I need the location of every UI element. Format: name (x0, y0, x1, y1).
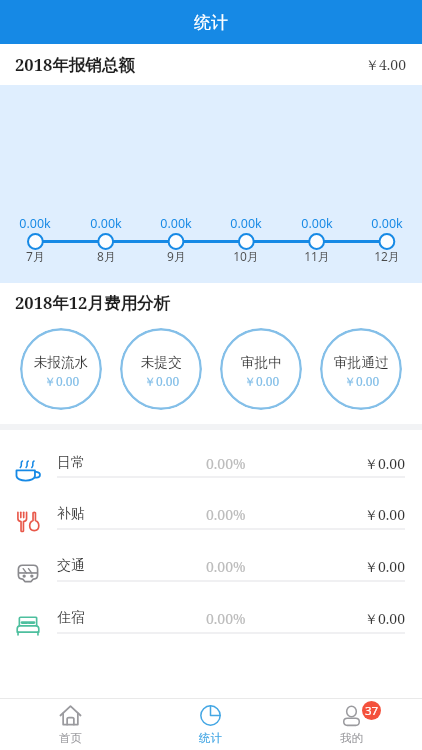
staticText: 0.00k (90, 215, 122, 232)
button[interactable]: 统计 (140, 699, 281, 750)
staticText: 2018年12月费用分析 (15, 291, 170, 314)
staticText: ￥4.00 (365, 55, 406, 74)
staticText: 7月 (26, 248, 45, 264)
staticText: 2018年报销总额 (15, 53, 135, 76)
button[interactable]: 日常 (0, 430, 422, 478)
staticText: 我的 (340, 731, 363, 745)
staticText: 8月 (97, 248, 116, 264)
staticText: 补贴 (57, 505, 85, 523)
staticText: 0.00% (206, 609, 246, 628)
staticText: 统计 (199, 731, 222, 745)
staticText: 11月 (304, 248, 330, 264)
staticText: 未提交 (141, 354, 182, 371)
button[interactable]: 交通 (0, 530, 422, 582)
staticText: 统计 (194, 12, 228, 33)
staticText: 10月 (233, 248, 259, 264)
staticText: 0.00% (206, 454, 246, 473)
button[interactable]: 审批中 (220, 328, 302, 410)
staticText: 审批中 (241, 354, 282, 371)
button[interactable]: 住宿 (0, 582, 422, 634)
staticText: ￥0.00 (344, 373, 380, 389)
staticText: 日常 (57, 454, 85, 472)
staticText: 12月 (374, 248, 400, 264)
button[interactable]: 37 (281, 699, 422, 750)
button[interactable]: 首页 (0, 699, 140, 750)
staticText: 未报流水 (34, 354, 89, 371)
staticText: 37 (365, 703, 379, 719)
staticText: ￥0.00 (244, 373, 280, 389)
button[interactable]: 补贴 (0, 478, 422, 530)
staticText: 首页 (59, 731, 82, 745)
staticText: 0.00k (19, 215, 51, 232)
button[interactable]: 未提交 (120, 328, 202, 410)
staticText: 9月 (167, 248, 186, 264)
staticText: 0.00k (301, 215, 333, 232)
staticText: ￥0.00 (144, 373, 180, 389)
staticText: 0.00k (371, 215, 403, 232)
staticText: 0.00k (160, 215, 192, 232)
staticText: ￥0.00 (364, 609, 405, 628)
staticText: 0.00k (230, 215, 262, 232)
staticText: ￥0.00 (364, 505, 405, 524)
staticText: ￥0.00 (364, 557, 405, 576)
staticText: ￥0.00 (44, 373, 80, 389)
button[interactable]: 未报流水 (20, 328, 102, 410)
staticText: 0.00% (206, 505, 246, 524)
staticText: 0.00% (206, 557, 246, 576)
button[interactable]: 审批通过 (320, 328, 402, 410)
staticText: 审批通过 (334, 354, 389, 371)
staticText: 住宿 (57, 609, 85, 627)
staticText: 交通 (57, 557, 85, 575)
staticText: ￥0.00 (364, 454, 405, 473)
